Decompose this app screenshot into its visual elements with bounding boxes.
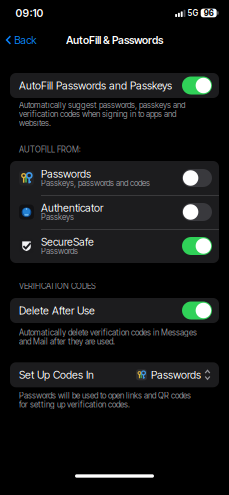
staticText: for setting up verification codes. <box>19 400 130 409</box>
button[interactable]: AutoFill Passwords and Passkeys <box>182 76 212 94</box>
staticText: 09:10 <box>15 7 43 19</box>
button[interactable]: Passwords <box>182 169 212 187</box>
button[interactable]: Back <box>6 34 36 46</box>
staticText: and Mail after they are used. <box>19 337 115 346</box>
button[interactable]: Authenticator <box>182 203 212 221</box>
staticText: Automatically suggest passwords, passkey… <box>19 100 185 110</box>
staticText: Passwords <box>41 167 91 180</box>
staticText: Delete After Use <box>19 304 95 317</box>
button[interactable]: SecureSafe <box>182 237 212 255</box>
staticText: Set Up Codes In <box>19 368 94 381</box>
staticText: Passwords <box>41 246 78 256</box>
staticText: Passkeys <box>41 212 74 222</box>
staticText: Passkeys, passwords and codes <box>41 178 150 188</box>
button[interactable]: AutoFill Passwords and Passkeys <box>10 73 219 98</box>
staticText: VERIFICATION CODES <box>19 281 96 291</box>
button[interactable]: Passwords <box>10 161 219 195</box>
staticText: AutoFill Passwords and Passkeys <box>19 79 172 92</box>
staticText: websites. <box>19 118 51 128</box>
staticText: verification codes when signing in to ap… <box>19 109 176 119</box>
button[interactable]: Set Up Codes In <box>10 362 219 387</box>
staticText: Automatically delete verification codes … <box>19 328 197 337</box>
staticText: Passwords <box>151 368 201 381</box>
staticText: 96 <box>204 8 214 18</box>
staticText: 5G <box>187 8 198 18</box>
button[interactable]: SecureSafe <box>10 229 219 263</box>
staticText: SecureSafe <box>41 235 94 248</box>
staticText: Back <box>14 34 36 46</box>
staticText: AUTOFILL FROM: <box>19 145 81 154</box>
button[interactable]: Delete After Use <box>182 301 212 319</box>
button[interactable]: Authenticator <box>10 195 219 229</box>
button[interactable]: Delete After Use <box>10 298 219 323</box>
staticText: Authenticator <box>41 201 103 214</box>
staticText: AutoFill & Passwords <box>66 34 163 46</box>
staticText: Passwords will be used to open links and… <box>19 391 191 400</box>
